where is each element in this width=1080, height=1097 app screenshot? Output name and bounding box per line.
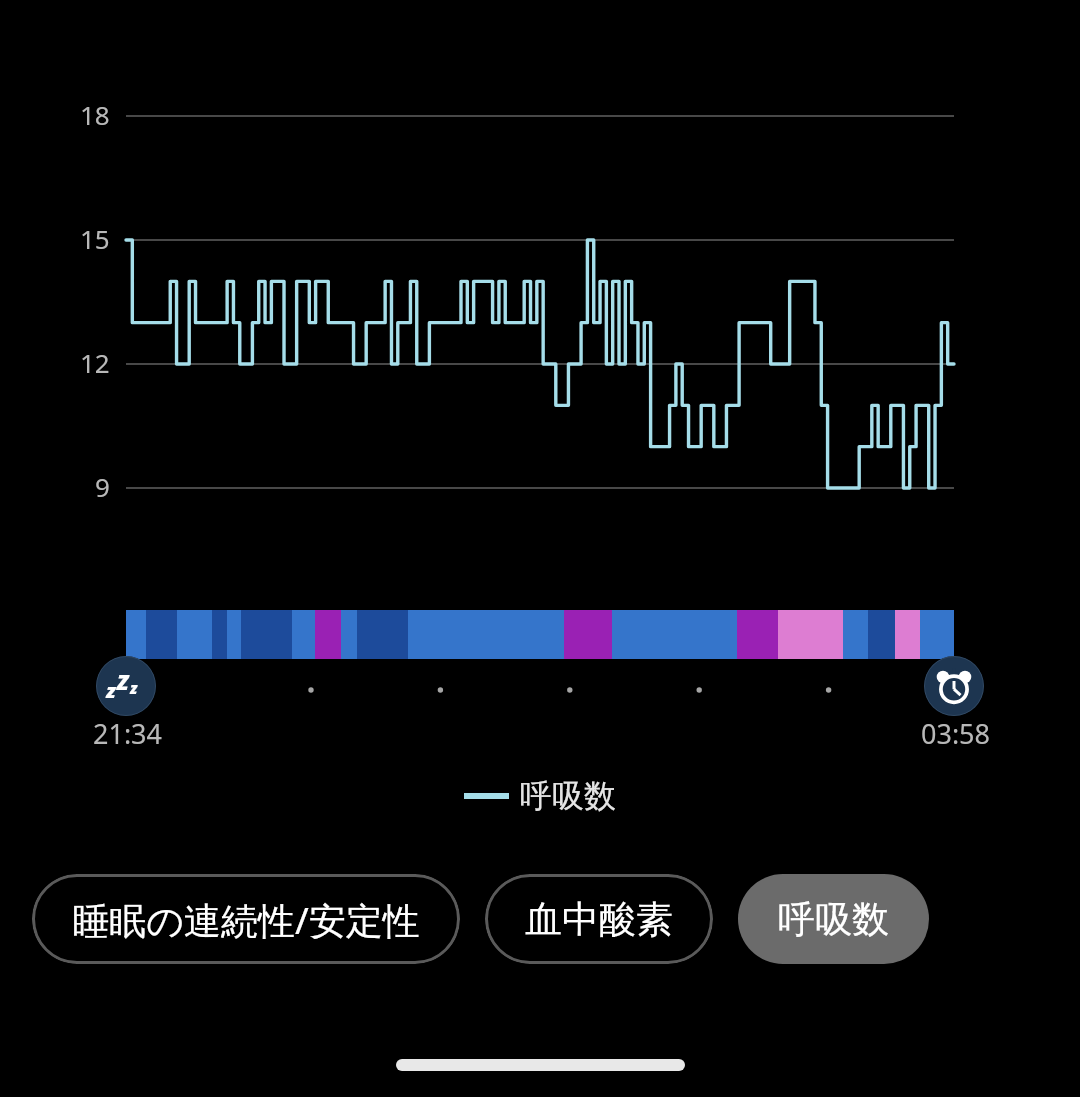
staticText: 9	[95, 469, 110, 504]
button[interactable]: 血中酸素	[485, 874, 713, 964]
staticText: 睡眠の連続性/安定性	[72, 894, 420, 945]
staticText: Z	[117, 668, 129, 697]
staticText: 血中酸素	[525, 896, 673, 943]
staticText: 15	[80, 221, 110, 256]
staticText: 呼吸数	[520, 776, 616, 816]
staticText: z	[106, 677, 116, 704]
staticText: 12	[80, 345, 110, 380]
staticText: 呼吸数	[778, 896, 889, 943]
button[interactable]: 睡眠の連続性/安定性	[32, 874, 460, 964]
button[interactable]: Wake alarm	[924, 656, 984, 716]
staticText: 18	[80, 97, 110, 132]
staticText: 03:58	[921, 715, 991, 752]
button[interactable]: 呼吸数	[738, 874, 929, 964]
staticText: 21:34	[93, 715, 163, 752]
staticText: z	[130, 678, 138, 698]
button[interactable]: Sleep start	[96, 656, 156, 716]
